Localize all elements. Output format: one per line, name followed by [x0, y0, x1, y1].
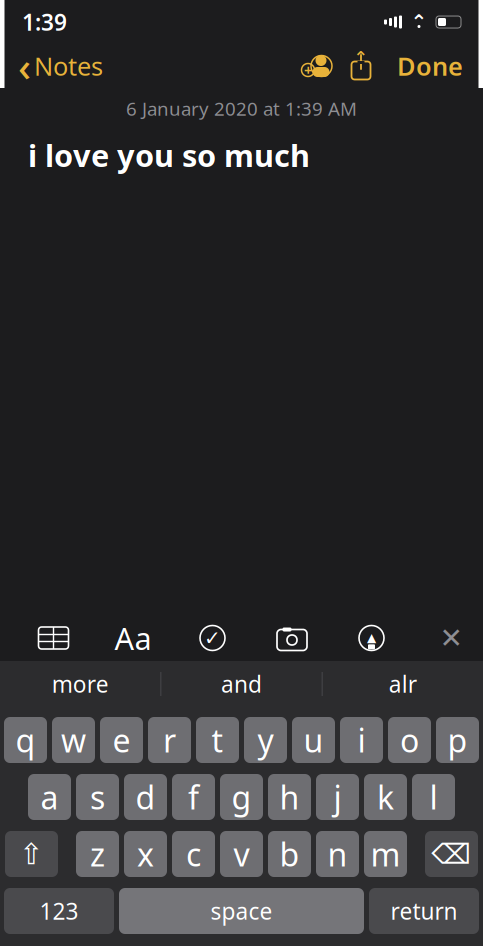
button[interactable]: y — [244, 717, 287, 763]
staticText: ⇧ — [19, 837, 44, 871]
staticText: ⌃ — [410, 11, 427, 33]
staticText: w — [61, 719, 86, 761]
button[interactable]: f — [172, 774, 215, 820]
button[interactable]: t — [196, 717, 239, 763]
staticText: q — [15, 719, 35, 761]
button[interactable]: x — [124, 831, 167, 877]
button[interactable]: d — [124, 774, 167, 820]
staticText: 123 — [39, 896, 78, 926]
button[interactable]: p — [436, 717, 479, 763]
button[interactable]: return — [369, 888, 479, 934]
staticText: u — [303, 719, 323, 761]
button[interactable]: e — [100, 717, 143, 763]
button[interactable]: alr — [323, 662, 483, 706]
staticText: more — [52, 669, 109, 699]
button[interactable]: and — [161, 662, 322, 706]
staticText: y — [257, 719, 273, 761]
staticText: m — [370, 833, 400, 875]
staticText: v — [233, 833, 249, 875]
button[interactable]: Add People — [295, 44, 339, 88]
staticText: ✕ — [439, 622, 462, 654]
button[interactable]: more — [0, 662, 160, 706]
staticText: f — [188, 776, 199, 818]
staticText: Done — [397, 49, 463, 83]
button[interactable]: q — [4, 717, 47, 763]
staticText: n — [327, 833, 347, 875]
staticText: k — [377, 776, 394, 818]
button[interactable]: Checklist — [186, 616, 238, 660]
button[interactable]: n — [316, 831, 359, 877]
staticText: b — [279, 833, 299, 875]
button[interactable]: Share — [339, 44, 383, 88]
staticText: g — [231, 776, 251, 818]
button[interactable]: Camera — [266, 616, 318, 660]
staticText: x — [137, 833, 154, 875]
button[interactable]: i — [340, 717, 383, 763]
button[interactable]: b — [268, 831, 311, 877]
staticText: j — [333, 776, 341, 818]
button[interactable]: a — [28, 774, 71, 820]
staticText: i love you so much — [28, 135, 310, 175]
button[interactable]: Close Keyboard — [425, 616, 477, 660]
button[interactable]: ‹ — [6, 44, 115, 88]
button[interactable]: space — [119, 888, 364, 934]
staticText: i — [357, 719, 365, 761]
staticText: Aa — [114, 618, 151, 658]
staticText: s — [90, 776, 105, 818]
button[interactable]: Text Format — [107, 616, 159, 660]
staticText: space — [210, 896, 272, 926]
button[interactable]: k — [364, 774, 407, 820]
button[interactable]: c — [172, 831, 215, 877]
staticText: o — [400, 719, 419, 761]
staticText: z — [90, 833, 105, 875]
button[interactable]: Done — [383, 44, 477, 88]
staticText: ✓ — [204, 627, 221, 649]
button[interactable]: s — [76, 774, 119, 820]
button[interactable]: w — [52, 717, 95, 763]
button[interactable]: Markup — [345, 616, 397, 660]
staticText: c — [186, 833, 201, 875]
staticText: l — [429, 776, 437, 818]
button[interactable]: m — [364, 831, 407, 877]
button[interactable]: z — [76, 831, 119, 877]
staticText: 6 January 2020 at 1:39 AM — [126, 96, 357, 121]
staticText: ▲ — [367, 631, 376, 644]
button[interactable]: Shift — [5, 831, 58, 877]
button[interactable]: 123 — [4, 888, 114, 934]
staticText: + — [304, 60, 312, 80]
staticText: 1:39 — [22, 7, 67, 37]
staticText: t — [211, 719, 223, 761]
button[interactable]: r — [148, 717, 191, 763]
button[interactable]: Table — [27, 616, 79, 660]
button[interactable]: u — [292, 717, 335, 763]
button[interactable]: o — [388, 717, 431, 763]
staticText: and — [221, 669, 262, 699]
staticText: return — [390, 896, 457, 926]
button[interactable]: l — [412, 774, 455, 820]
staticText: a — [40, 776, 58, 818]
staticText: d — [135, 776, 155, 818]
staticText: alr — [389, 669, 417, 699]
button[interactable]: g — [220, 774, 263, 820]
staticText: p — [447, 719, 467, 761]
button[interactable]: Delete — [425, 831, 478, 877]
staticText: r — [163, 719, 176, 761]
staticText: ‹ — [18, 39, 31, 92]
staticText: ⌫ — [431, 838, 471, 870]
button[interactable]: j — [316, 774, 359, 820]
staticText: ⌃ — [353, 48, 368, 67]
staticText: h — [279, 776, 299, 818]
button[interactable]: v — [220, 831, 263, 877]
button[interactable]: h — [268, 774, 311, 820]
staticText: Notes — [34, 49, 103, 83]
staticText: e — [112, 719, 130, 761]
